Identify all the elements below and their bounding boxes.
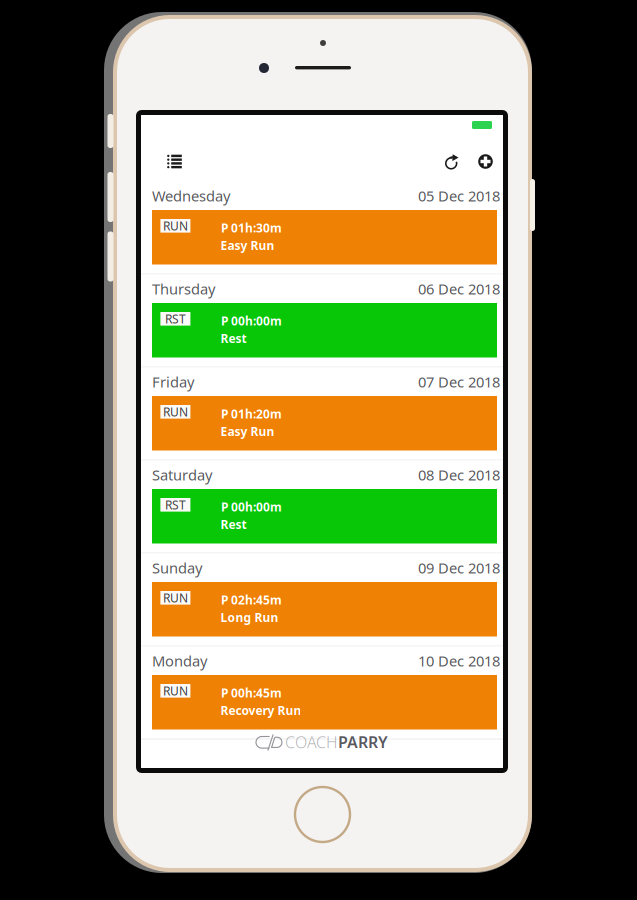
staticText: Rest xyxy=(220,330,246,346)
staticText: 05 Dec 2018 xyxy=(418,186,500,205)
staticText: Friday xyxy=(152,372,194,391)
staticText: PARRY xyxy=(338,731,388,753)
staticText: RST xyxy=(165,497,186,513)
staticText: Long Run xyxy=(220,609,278,625)
button[interactable]: Menu xyxy=(149,144,200,178)
staticText: COACH xyxy=(281,731,338,753)
button[interactable]: RUN xyxy=(152,675,497,729)
staticText: Easy Run xyxy=(220,423,274,439)
staticText: P 01h:20m xyxy=(221,406,282,422)
button[interactable]: RUN xyxy=(152,396,497,450)
staticText: P 00h:45m xyxy=(221,685,282,701)
staticText: Recovery Run xyxy=(220,702,301,718)
staticText: 08 Dec 2018 xyxy=(418,465,500,484)
button[interactable]: Refresh xyxy=(434,144,468,178)
button[interactable]: RUN xyxy=(152,582,497,636)
staticText: 10 Dec 2018 xyxy=(418,651,500,670)
staticText: Monday xyxy=(152,651,207,670)
staticText: 06 Dec 2018 xyxy=(418,279,500,298)
staticText: Wednesday xyxy=(152,186,230,205)
staticText: RST xyxy=(165,311,186,327)
staticText: RUN xyxy=(163,218,188,234)
staticText: P 00h:00m xyxy=(221,313,282,329)
staticText: P 00h:00m xyxy=(221,499,282,515)
staticText: RUN xyxy=(163,404,188,420)
staticText: 07 Dec 2018 xyxy=(418,372,500,391)
staticText: Rest xyxy=(220,516,246,532)
button[interactable]: RST xyxy=(152,489,497,543)
staticText: P 01h:30m xyxy=(221,220,282,236)
staticText: Thursday xyxy=(152,279,215,298)
button[interactable]: RUN xyxy=(152,210,497,264)
staticText: RUN xyxy=(163,590,188,606)
staticText: P 02h:45m xyxy=(221,592,282,608)
staticText: Easy Run xyxy=(220,237,274,253)
staticText: Sunday xyxy=(152,558,202,577)
button[interactable]: Add xyxy=(468,144,503,178)
staticText: 09 Dec 2018 xyxy=(418,558,500,577)
staticText: RUN xyxy=(163,683,188,699)
button[interactable]: RST xyxy=(152,303,497,357)
staticText: Saturday xyxy=(152,465,212,484)
